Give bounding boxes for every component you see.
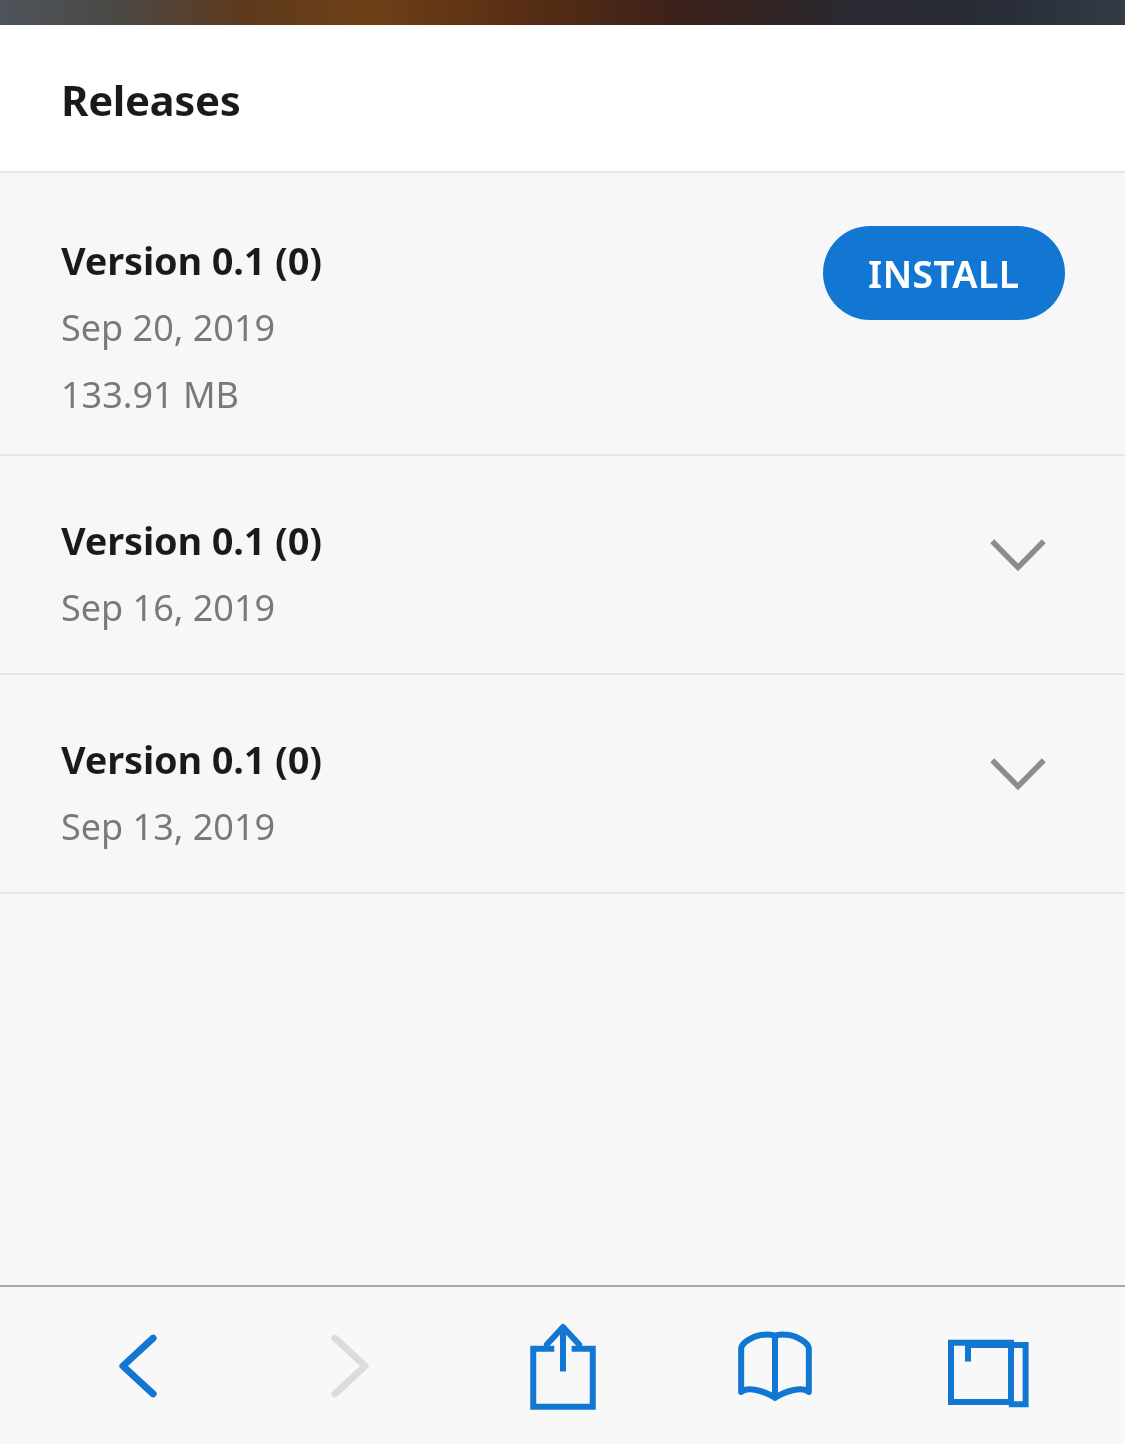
button[interactable]: Bookmarks (700, 1287, 850, 1444)
staticText: Sep 16, 2019 (61, 583, 276, 632)
staticText: Releases (61, 71, 241, 128)
staticText: Sep 20, 2019 (61, 303, 276, 352)
button[interactable]: Tabs (913, 1287, 1063, 1444)
staticText: 133.91 MB (61, 370, 240, 419)
staticText: INSTALL (868, 248, 1020, 298)
staticText: Sep 13, 2019 (61, 802, 276, 851)
button[interactable]: Forward (275, 1287, 425, 1444)
staticText: Version 0.1 (0) (61, 733, 322, 785)
button[interactable]: Expand (972, 508, 1064, 600)
button[interactable]: Version 0.1 (0) (0, 173, 1125, 454)
staticText: Version 0.1 (0) (61, 234, 322, 286)
button[interactable]: Version 0.1 (0) (0, 675, 1125, 892)
button[interactable]: INSTALL (823, 226, 1065, 320)
button[interactable]: Back (63, 1287, 213, 1444)
button[interactable]: Expand (972, 727, 1064, 819)
button[interactable]: Share (488, 1287, 638, 1444)
staticText: Version 0.1 (0) (61, 514, 322, 566)
button[interactable]: Version 0.1 (0) (0, 456, 1125, 673)
